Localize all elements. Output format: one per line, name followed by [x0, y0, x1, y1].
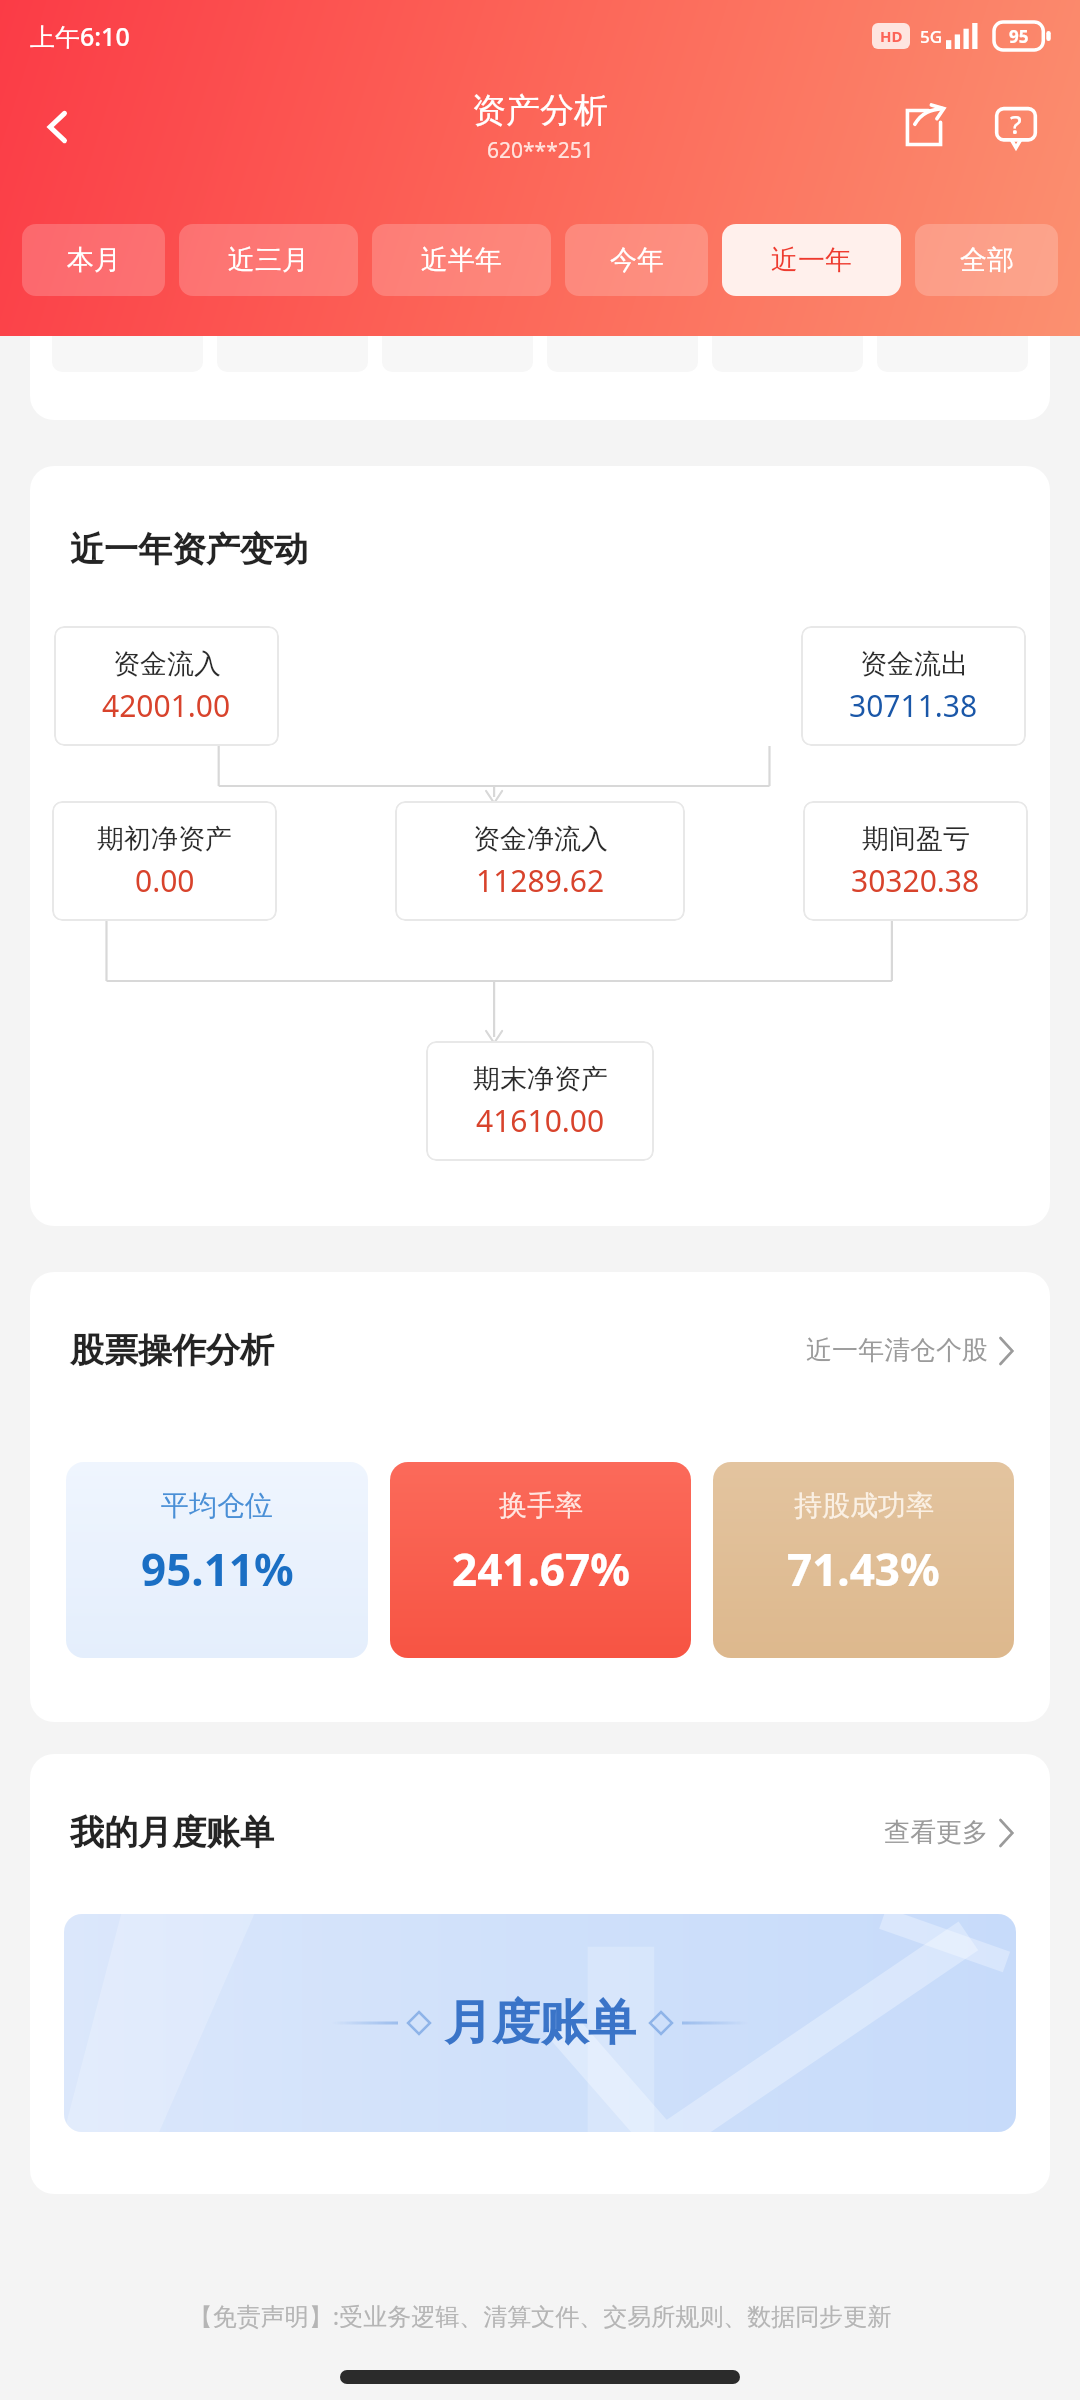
staticText: 【免责声明】:受业务逻辑、清算文件、交易所规则、数据同步更新 [24, 2299, 1056, 2332]
staticText: 5G [920, 25, 943, 48]
button[interactable]: Share [882, 85, 966, 169]
staticText: 近一年清仓个股 [806, 1334, 988, 1367]
staticText: 查看更多 [884, 1816, 988, 1849]
staticText: 近一年 [771, 243, 852, 277]
staticText: 期初净资产 [97, 822, 232, 856]
button[interactable]: 资金净流入 [395, 801, 685, 921]
button[interactable]: 全部 [915, 224, 1058, 296]
button[interactable]: 今年 [565, 224, 708, 296]
button[interactable]: 月度账单 [64, 1914, 1016, 2132]
staticText: 资产分析 [472, 89, 608, 132]
staticText: 上午6:10 [30, 19, 130, 53]
staticText: ? [1010, 106, 1022, 141]
staticText: 股票操作分析 [70, 1329, 274, 1372]
staticText: 近一年资产变动 [70, 528, 308, 571]
staticText: 资金流入 [113, 647, 221, 681]
staticText: 资金净流入 [473, 822, 608, 856]
staticText: 71.43% [787, 1539, 940, 1599]
staticText: 42001.00 [102, 685, 231, 726]
button[interactable]: 近三月 [179, 224, 358, 296]
staticText: 11289.62 [476, 860, 605, 901]
staticText: 全部 [960, 243, 1014, 277]
staticText: 241.67% [452, 1539, 630, 1599]
button[interactable]: 平均仓位 [66, 1462, 368, 1658]
button[interactable]: 换手率 [390, 1462, 691, 1658]
staticText: 期间盈亏 [862, 822, 970, 856]
button[interactable]: 近一年清仓个股 [800, 1328, 1020, 1373]
staticText: 期末净资产 [473, 1062, 608, 1096]
staticText: 95.11% [141, 1539, 294, 1599]
staticText: 资金流出 [860, 647, 968, 681]
staticText: 近三月 [228, 243, 309, 277]
button[interactable]: 资金流出 [801, 626, 1026, 746]
staticText: 41610.00 [476, 1100, 605, 1141]
staticText: 30711.38 [849, 685, 978, 726]
staticText: 持股成功率 [794, 1488, 934, 1523]
button[interactable]: 近半年 [372, 224, 551, 296]
button[interactable]: 期末净资产 [426, 1041, 654, 1161]
button[interactable]: Help [974, 85, 1058, 169]
staticText: 0.00 [135, 860, 195, 901]
staticText: HD [880, 26, 903, 46]
staticText: 平均仓位 [161, 1488, 273, 1523]
button[interactable]: 期间盈亏 [803, 801, 1028, 921]
staticText: 30320.38 [851, 860, 980, 901]
staticText: 本月 [67, 243, 121, 277]
staticText: 换手率 [499, 1488, 583, 1523]
button[interactable]: 本月 [22, 224, 165, 296]
staticText: 近半年 [421, 243, 502, 277]
staticText: 今年 [610, 243, 664, 277]
staticText: 95 [1009, 25, 1029, 48]
button[interactable]: 资金流入 [54, 626, 279, 746]
staticText: 月度账单 [444, 1993, 636, 2053]
button[interactable]: 查看更多 [878, 1810, 1020, 1855]
button[interactable]: 近一年 [722, 224, 901, 296]
button[interactable]: 期初净资产 [52, 801, 277, 921]
button[interactable]: Back [18, 87, 98, 167]
staticText: 我的月度账单 [70, 1811, 274, 1854]
staticText: 620***251 [487, 136, 594, 165]
button[interactable]: 持股成功率 [713, 1462, 1014, 1658]
